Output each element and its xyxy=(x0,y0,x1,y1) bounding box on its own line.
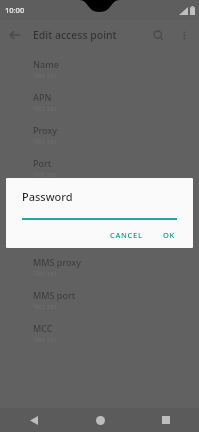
staticText: APN xyxy=(33,91,52,103)
staticText: MMS proxy xyxy=(33,256,81,268)
staticText: CANCEL xyxy=(110,230,143,240)
button[interactable]: CANCEL xyxy=(103,226,150,244)
button[interactable]: Port xyxy=(0,154,199,187)
staticText: Not set xyxy=(33,170,57,180)
button[interactable]: Recent apps xyxy=(133,408,199,432)
staticText: Server xyxy=(33,190,61,202)
staticText: MMS port xyxy=(33,289,76,301)
button[interactable]: Server xyxy=(0,187,199,220)
staticText: 10:00 xyxy=(5,5,25,15)
button[interactable]: Home xyxy=(67,408,133,432)
button[interactable]: OK xyxy=(156,226,183,244)
staticText: Edit access point xyxy=(33,28,117,42)
button[interactable]: MMS proxy xyxy=(0,253,199,286)
staticText: MCC xyxy=(33,322,53,334)
staticText: Password xyxy=(22,189,73,204)
button[interactable]: MMS port xyxy=(0,286,199,319)
button[interactable]: MMSC xyxy=(0,220,199,253)
button[interactable]: Back xyxy=(0,20,30,50)
button[interactable]: Search xyxy=(144,21,172,49)
button[interactable]: Back xyxy=(0,408,67,432)
staticText: Port xyxy=(33,157,52,169)
staticText: Name xyxy=(33,58,59,70)
staticText: Proxy xyxy=(33,124,58,136)
staticText: OK xyxy=(163,230,176,240)
